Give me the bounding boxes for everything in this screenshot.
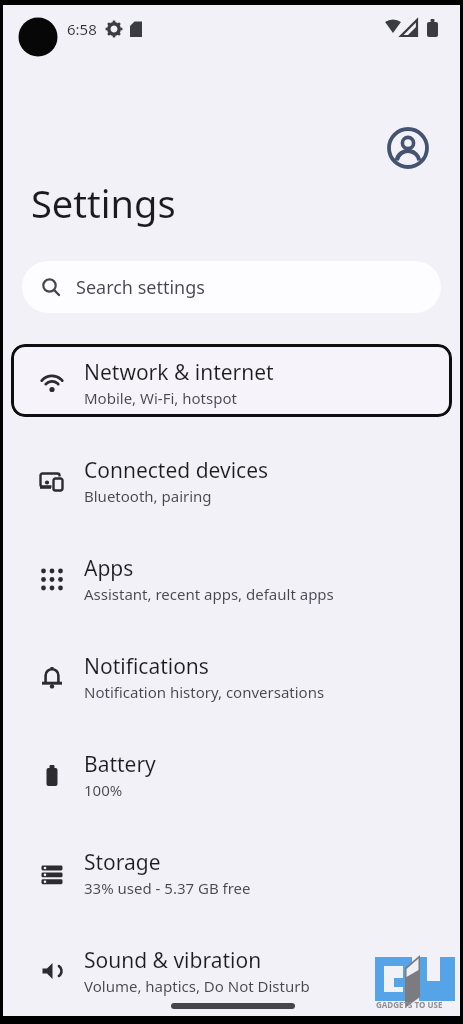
staticText: Sound & vibration: [84, 946, 262, 975]
staticText: Bluetooth, pairing: [84, 486, 212, 506]
staticText: 33% used - 5.37 GB free: [84, 878, 251, 898]
staticText: Storage: [84, 848, 161, 877]
staticText: Notification history, conversations: [84, 682, 325, 702]
staticText: Notifications: [84, 652, 209, 681]
button[interactable]: [384, 124, 432, 172]
staticText: Connected devices: [84, 456, 269, 485]
button[interactable]: Apps: [3, 530, 460, 628]
staticText: Apps: [84, 554, 134, 583]
button[interactable]: Sound & vibration: [3, 922, 460, 1020]
button[interactable]: Storage: [3, 824, 460, 922]
staticText: 100%: [84, 780, 123, 800]
staticText: Mobile, Wi-Fi, hotspot: [84, 388, 237, 408]
staticText: Network & internet: [84, 358, 274, 387]
staticText: Search settings: [76, 275, 205, 300]
button[interactable]: Battery: [3, 726, 460, 824]
staticText: Settings: [31, 177, 176, 229]
staticText: 6:58: [67, 19, 97, 39]
staticText: Volume, haptics, Do Not Disturb: [84, 976, 310, 996]
button[interactable]: Notifications: [3, 628, 460, 726]
staticText: Assistant, recent apps, default apps: [84, 584, 334, 604]
staticText: GADGETS TO USE: [376, 999, 443, 1010]
staticText: Battery: [84, 750, 156, 779]
button[interactable]: Connected devices: [3, 432, 460, 530]
button[interactable]: Network & internet: [3, 334, 460, 432]
button[interactable]: Search settings: [22, 261, 441, 313]
